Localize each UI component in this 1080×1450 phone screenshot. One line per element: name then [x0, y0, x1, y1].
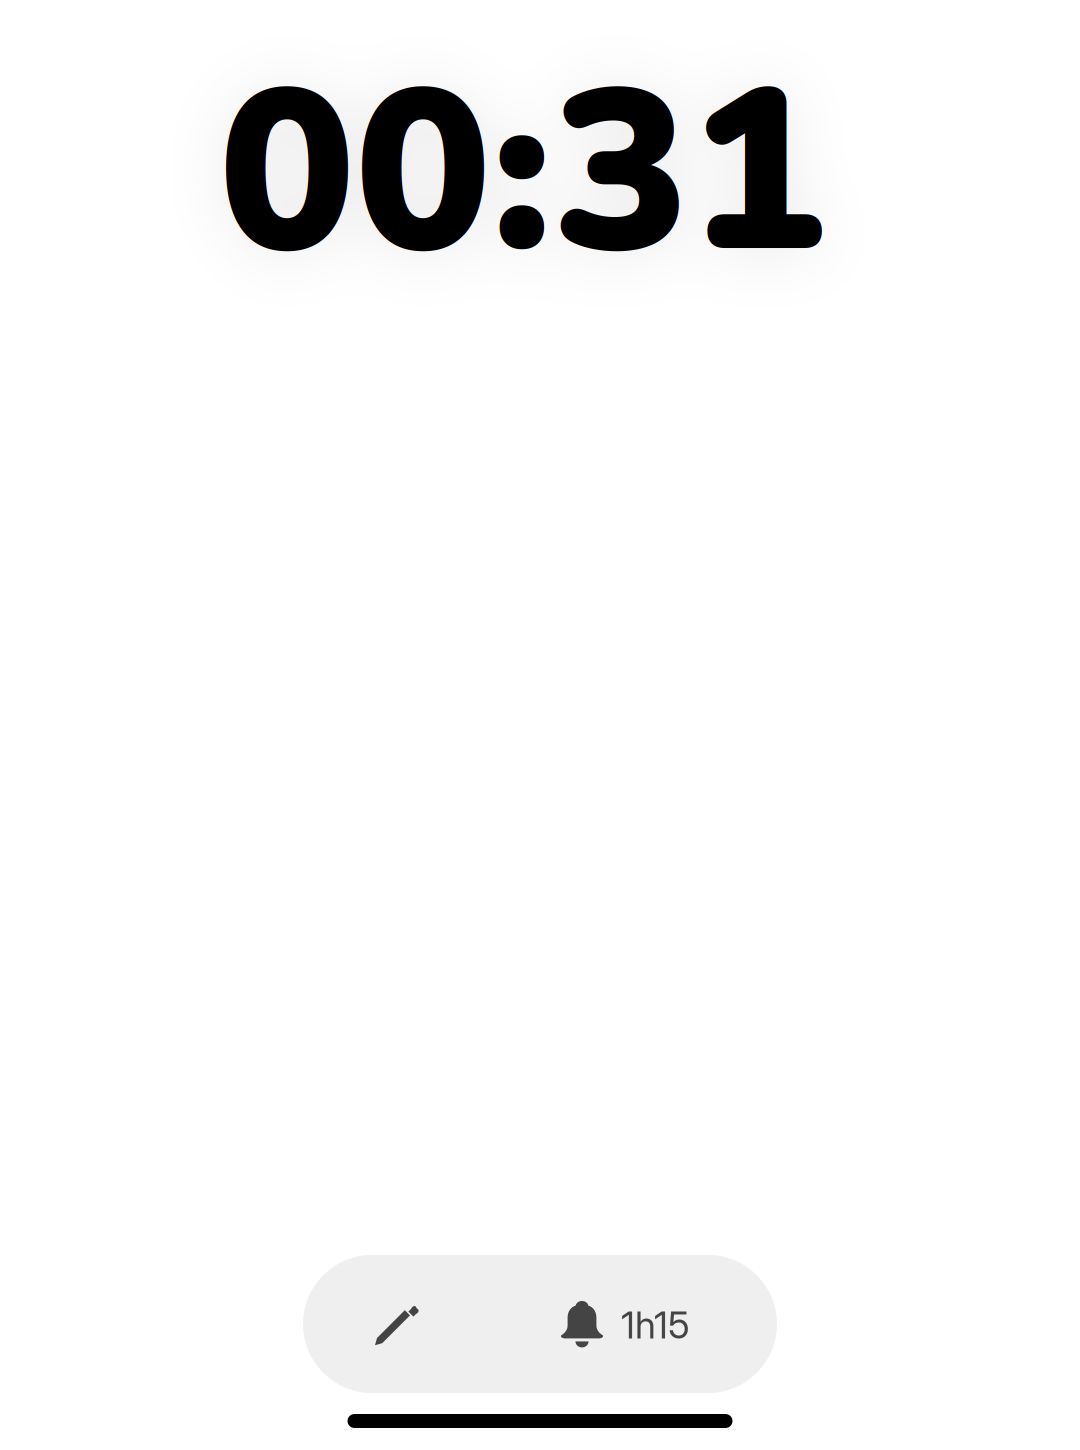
staticText: 00:31	[219, 19, 825, 328]
button[interactable]: 1h15	[491, 1255, 777, 1393]
button[interactable]: Edit timer	[303, 1255, 491, 1393]
staticText: 1h15	[621, 1302, 690, 1348]
